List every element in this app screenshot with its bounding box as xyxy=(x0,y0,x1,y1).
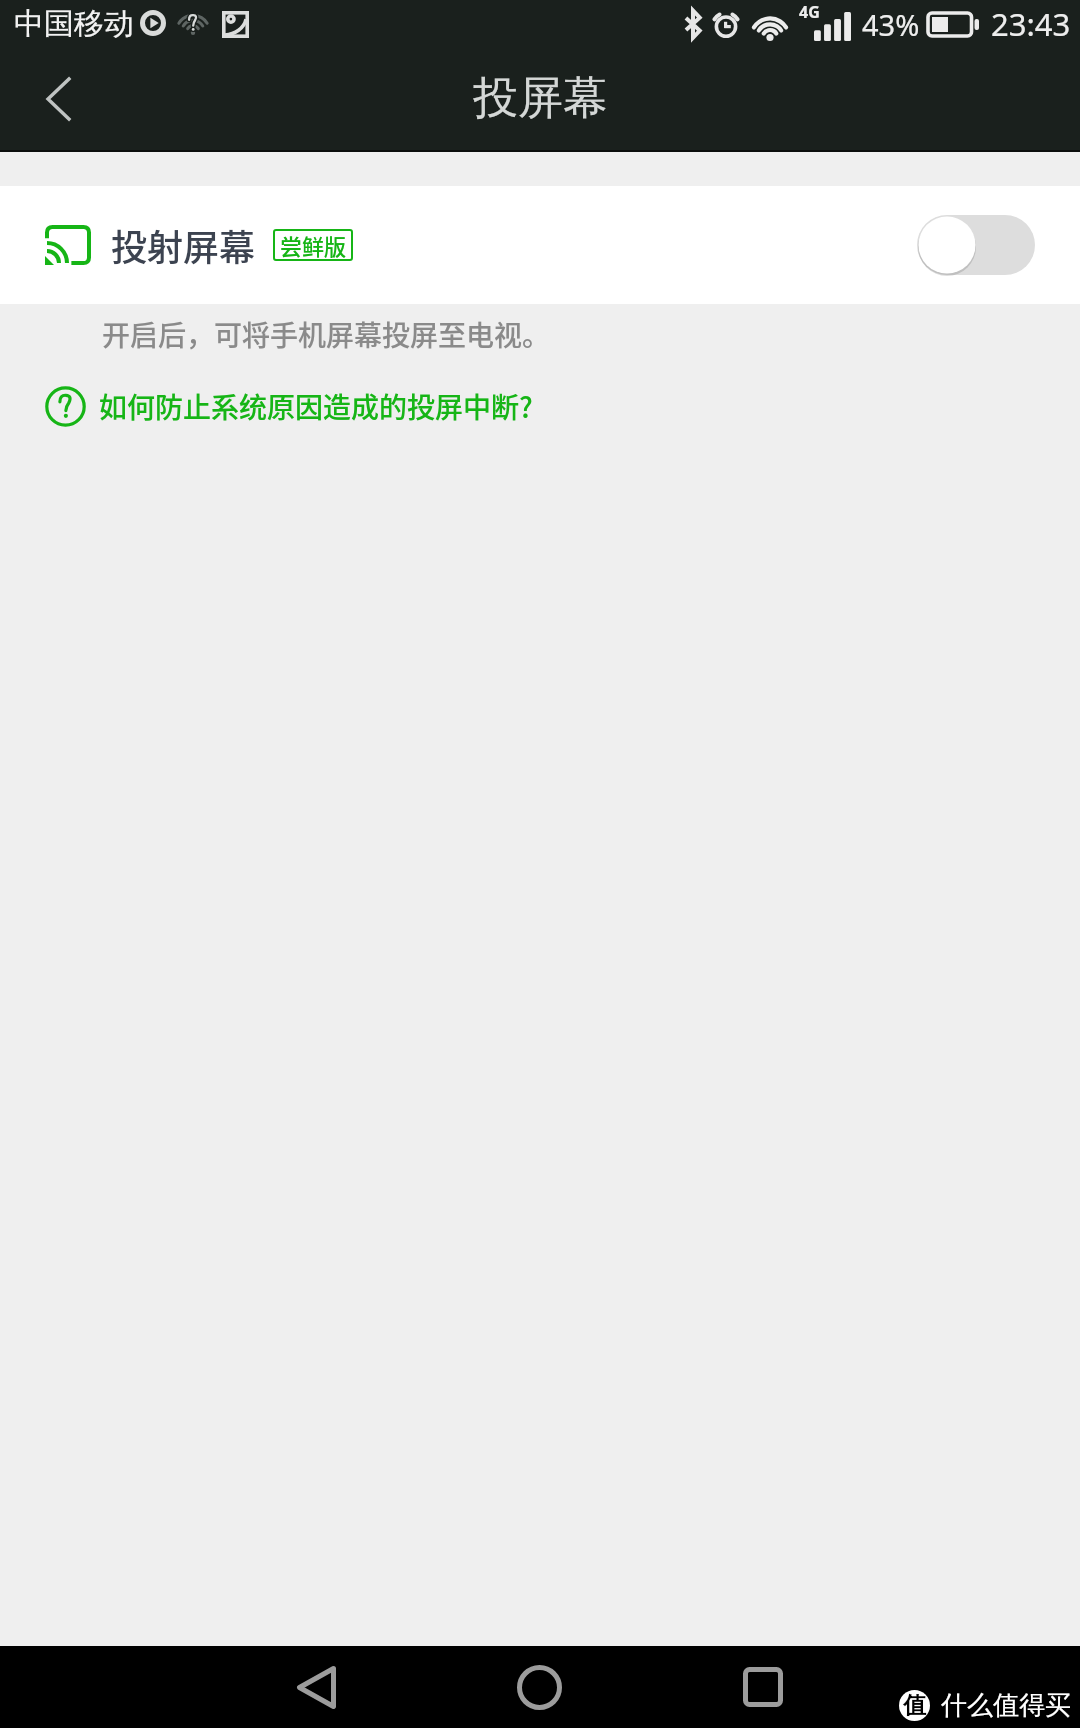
button[interactable]: 投射屏幕 xyxy=(0,186,1080,304)
staticText: 值 xyxy=(903,1691,926,1720)
button[interactable]: Recents xyxy=(708,1646,818,1728)
button[interactable]: 如何防止系统原因造成的投屏中断? xyxy=(45,386,541,427)
staticText: 投射屏幕 xyxy=(111,219,256,271)
staticText: 开启后，可将手机屏幕投屏至电视。 xyxy=(102,314,551,355)
staticText: 23:43 xyxy=(991,3,1071,45)
staticText: 43% xyxy=(862,5,920,44)
staticText: 投屏幕 xyxy=(473,70,608,127)
button[interactable]: Back xyxy=(10,51,106,147)
button[interactable]: Back xyxy=(261,1646,371,1728)
staticText: 尝鲜版 xyxy=(280,229,347,261)
staticText: 如何防止系统原因造成的投屏中断? xyxy=(99,386,533,427)
button[interactable]: Toggle cast screen xyxy=(917,215,1035,275)
button[interactable]: Home xyxy=(484,1646,594,1728)
staticText: 什么值得买 xyxy=(941,1689,1071,1722)
staticText: 4G xyxy=(799,1,820,23)
staticText: 中国移动 xyxy=(14,5,134,43)
